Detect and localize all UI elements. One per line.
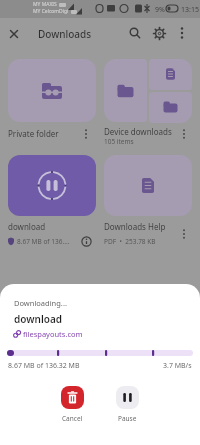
button[interactable]: filespayouts.com: [13, 329, 83, 339]
staticText: 105 items: [104, 137, 134, 146]
staticText: 9%: [155, 5, 165, 15]
button[interactable]: [6, 26, 22, 42]
button[interactable]: [174, 25, 190, 41]
staticText: download: [14, 312, 63, 326]
staticText: filespayouts.com: [23, 329, 83, 339]
button[interactable]: [178, 228, 190, 240]
button[interactable]: [8, 155, 96, 216]
staticText: 3.7 MB/s: [163, 361, 192, 371]
button[interactable]: [149, 59, 192, 90]
staticText: Cancel: [62, 414, 83, 423]
button[interactable]: [151, 25, 168, 42]
staticText: 8.67 MB of 136.32 MB: [8, 361, 80, 371]
button[interactable]: [149, 92, 192, 123]
button[interactable]: [104, 155, 192, 216]
staticText: MY CelcomDigi: [33, 8, 69, 15]
staticText: Pause: [118, 414, 137, 423]
staticText: 13:15: [181, 5, 199, 15]
staticText: PDF • 253.78 KB: [104, 237, 156, 246]
button[interactable]: [178, 128, 190, 140]
button[interactable]: [104, 59, 147, 122]
staticText: Device downloads: [104, 126, 172, 137]
button[interactable]: Cancel: [61, 386, 84, 423]
staticText: Downloads: [38, 27, 92, 41]
button[interactable]: [127, 25, 143, 41]
staticText: MY MAXIS: [33, 1, 57, 8]
button[interactable]: [80, 128, 92, 140]
button[interactable]: [80, 235, 93, 248]
staticText: 8.67 MB of 136....: [17, 237, 70, 246]
button[interactable]: [8, 59, 96, 122]
staticText: download: [8, 221, 46, 232]
staticText: Downloads Help: [104, 221, 166, 232]
button[interactable]: Pause: [116, 386, 139, 423]
staticText: Downloading...: [14, 298, 67, 308]
staticText: Private folder: [8, 128, 59, 139]
